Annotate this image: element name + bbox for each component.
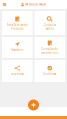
staticText: Consulta de <box>41 47 58 51</box>
staticText: Producto <box>11 27 24 30</box>
button[interactable]: Consulta <box>34 11 65 35</box>
staticText: Mi Banco Movil <box>25 3 46 6</box>
button[interactable]: Consulta de <box>34 37 65 58</box>
button[interactable]: Confirmar <box>34 60 65 82</box>
button[interactable]: Ficha Tecnica de <box>2 11 32 35</box>
button[interactable]: Transferir <box>2 37 32 58</box>
staticText: Transferir <box>11 48 23 52</box>
button[interactable]: Menu <box>0 0 9 9</box>
staticText: Saldos <box>46 27 54 30</box>
staticText: Ficha Tecnica de <box>7 23 28 27</box>
staticText: Confirmar <box>43 72 56 76</box>
staticText: Depositar <box>11 72 24 76</box>
staticText: Movimientos <box>41 51 58 54</box>
button[interactable]: Depositar <box>2 60 32 82</box>
button[interactable]: Add <box>28 99 39 110</box>
staticText: Consulta <box>44 23 56 27</box>
